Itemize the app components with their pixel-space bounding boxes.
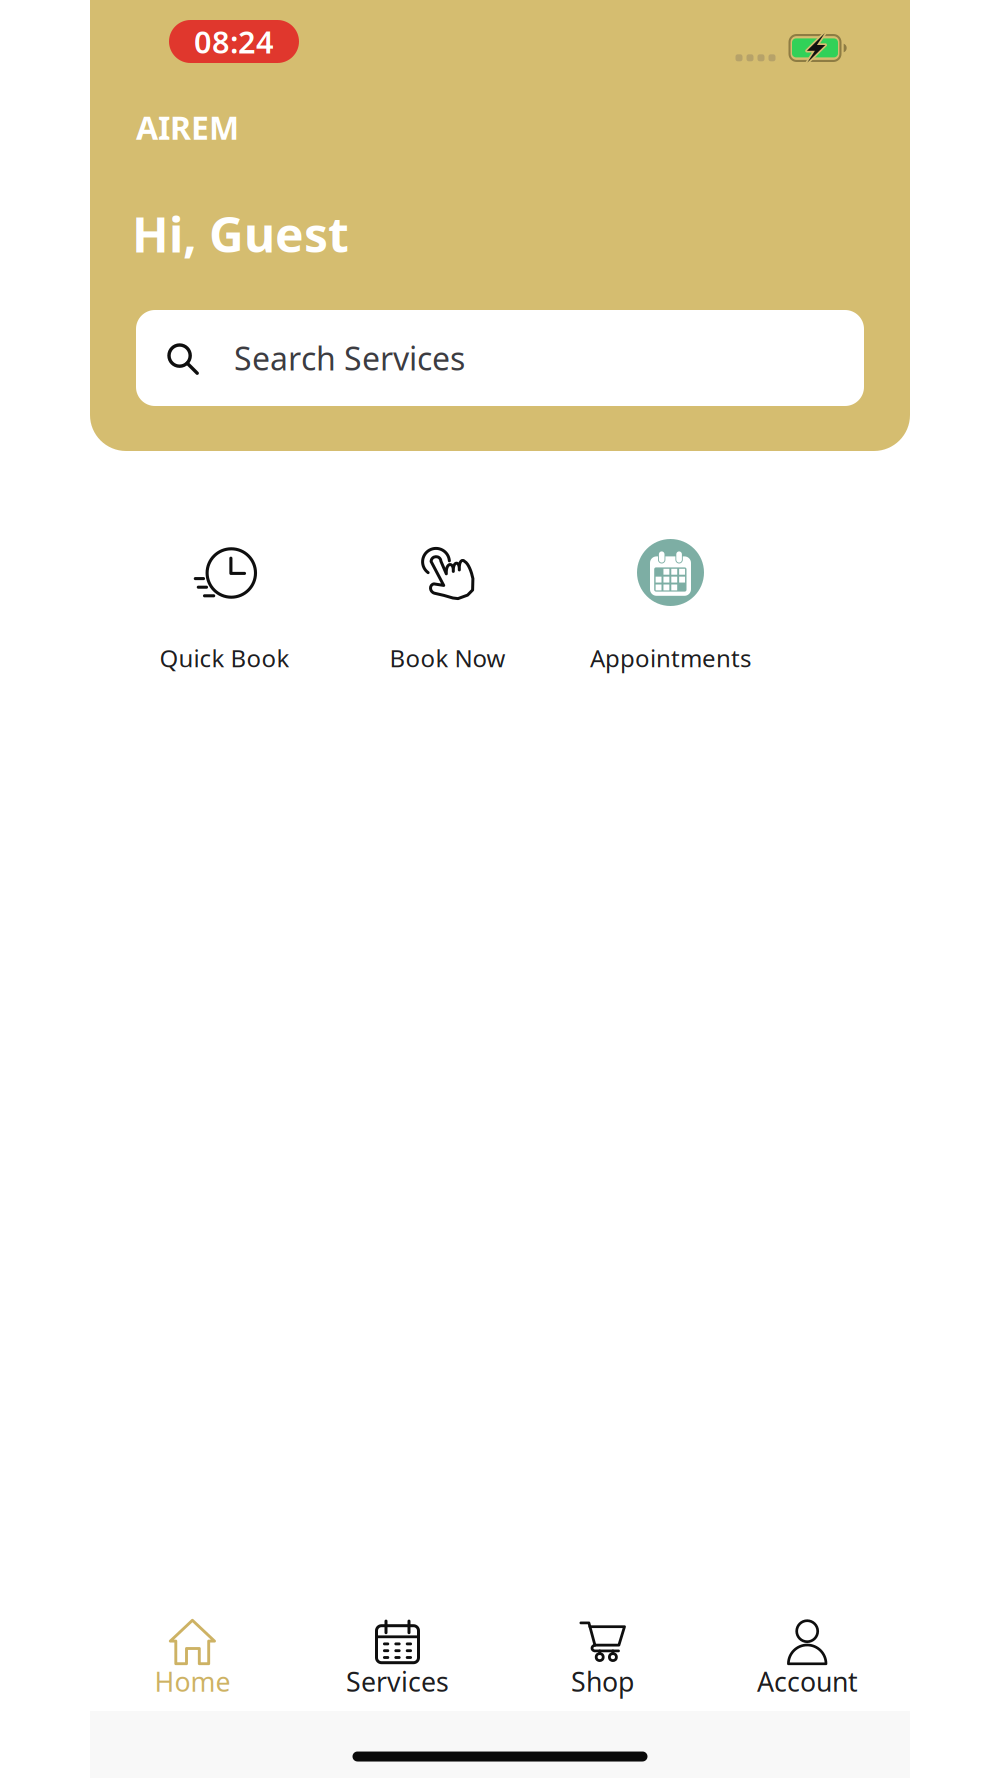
- staticText: Account: [757, 1664, 858, 1699]
- staticText: Appointments: [590, 642, 751, 674]
- button[interactable]: Services: [295, 1619, 500, 1695]
- staticText: Quick Book: [159, 642, 289, 674]
- button[interactable]: Appointments: [559, 539, 782, 669]
- staticText: 08:24: [194, 21, 274, 62]
- staticText: Home: [154, 1664, 230, 1699]
- button[interactable]: Search Services: [136, 310, 864, 406]
- staticText: Shop: [571, 1664, 634, 1699]
- staticText: Hi, Guest: [132, 202, 349, 266]
- button[interactable]: Book Now: [336, 539, 559, 669]
- button[interactable]: Quick Book: [113, 539, 336, 669]
- staticText: Services: [346, 1664, 449, 1699]
- button[interactable]: Account: [705, 1619, 910, 1695]
- staticText: Book Now: [389, 642, 505, 674]
- button[interactable]: Shop: [500, 1619, 705, 1695]
- button[interactable]: Home: [90, 1619, 295, 1695]
- staticText: AIREM: [136, 106, 239, 148]
- button[interactable]: Clock: [169, 20, 299, 63]
- staticText: Search Services: [234, 337, 465, 379]
